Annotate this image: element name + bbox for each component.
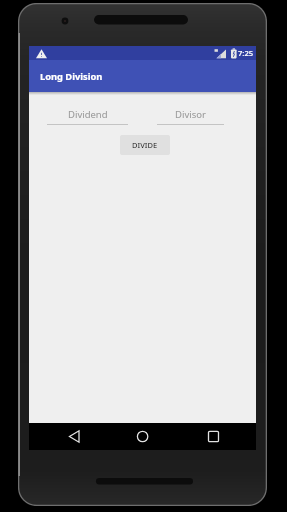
button[interactable] (104, 423, 180, 450)
staticText: Divisor (175, 108, 206, 121)
staticText: DIVIDE (132, 140, 158, 150)
staticText: Long Division (40, 70, 103, 83)
button[interactable]: Divisor (157, 108, 224, 125)
button[interactable]: DIVIDE (120, 135, 170, 155)
staticText: Dividend (68, 108, 108, 121)
staticText: 7:25 (238, 48, 254, 58)
button[interactable] (29, 423, 104, 450)
button[interactable] (180, 423, 256, 450)
button[interactable]: Dividend (47, 108, 128, 125)
